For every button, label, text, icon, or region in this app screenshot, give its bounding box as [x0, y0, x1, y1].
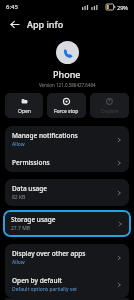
staticText: 6:45	[6, 3, 18, 11]
staticText: Data usage	[12, 184, 48, 193]
button[interactable]: Storage usage	[3, 210, 131, 237]
staticText: 82 KB	[12, 194, 26, 201]
staticText: Permissions	[12, 158, 50, 167]
staticText: Allow	[12, 259, 25, 266]
button[interactable]: Back	[6, 16, 22, 32]
button[interactable]: Manage notifications	[5, 126, 129, 153]
staticText: Storage usage	[11, 215, 56, 224]
staticText: Open	[18, 108, 31, 115]
button[interactable]: Force stop	[47, 93, 86, 118]
staticText: Open by default	[12, 276, 62, 285]
staticText: 27.7 MB	[11, 225, 31, 232]
button[interactable]: Open	[5, 93, 43, 118]
staticText: 29%	[117, 4, 128, 11]
staticText: Disable	[101, 108, 119, 115]
button[interactable]: Disable	[90, 93, 129, 118]
button[interactable]: Permissions	[5, 153, 129, 172]
staticText: Default options partially set	[12, 286, 77, 293]
button[interactable]: Open by default	[5, 271, 129, 298]
staticText: Version 121.0.586427.6464	[39, 82, 96, 88]
staticText: App info	[27, 18, 64, 30]
staticText: Force stop	[54, 108, 79, 115]
button[interactable]: Data usage	[5, 179, 129, 206]
staticText: Display over other apps	[12, 249, 86, 258]
staticText: Phone	[53, 68, 81, 80]
staticText: Allow	[12, 141, 25, 148]
button[interactable]: Display over other apps	[5, 244, 129, 271]
staticText: Manage notifications	[12, 131, 78, 140]
